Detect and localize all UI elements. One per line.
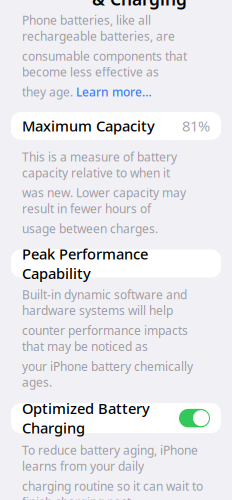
staticText: Maximum Capacity [22, 116, 155, 136]
staticText: they age. [22, 84, 73, 100]
staticText: Peak Performance Capability [22, 244, 148, 283]
staticText: 81% [182, 116, 210, 136]
staticText: To reduce battery aging, iPhone learns f… [22, 442, 198, 474]
staticText: charging routine so it can wait to finis… [22, 478, 203, 500]
staticText: Optimized Battery Charging [22, 399, 150, 438]
staticText: Built-in dynamic software and hardware s… [22, 286, 187, 318]
staticText: Learn more… [76, 84, 152, 100]
staticText: Battery Health & Charging [92, 0, 215, 10]
staticText: counter performance impacts that may be … [22, 322, 188, 354]
staticText: This is a measure of battery capacity re… [22, 149, 177, 181]
staticText: Phone batteries, like all rechargeable b… [22, 12, 175, 44]
staticText: was new. Lower capacity may result in fe… [22, 185, 186, 217]
button[interactable]: Learn more… [76, 84, 152, 100]
button[interactable]: Peak Performance Capability [11, 249, 221, 277]
button[interactable]: Optimized Battery Charging [11, 403, 221, 433]
staticText: consumable components that become less e… [22, 48, 187, 80]
button[interactable]: Maximum Capacity [11, 112, 221, 140]
staticText: your iPhone battery chemically ages. [22, 358, 193, 390]
staticText: usage between charges. [22, 221, 158, 236]
